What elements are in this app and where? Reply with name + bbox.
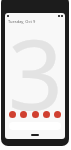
button[interactable]: App (32, 111, 39, 118)
button[interactable]: App (54, 111, 61, 118)
staticText: Tuesday, Oct 9 (8, 19, 36, 24)
button[interactable]: App (43, 111, 50, 118)
button[interactable]: App (20, 111, 27, 118)
staticText: 3 (8, 13, 63, 133)
button[interactable]: App (9, 111, 16, 118)
